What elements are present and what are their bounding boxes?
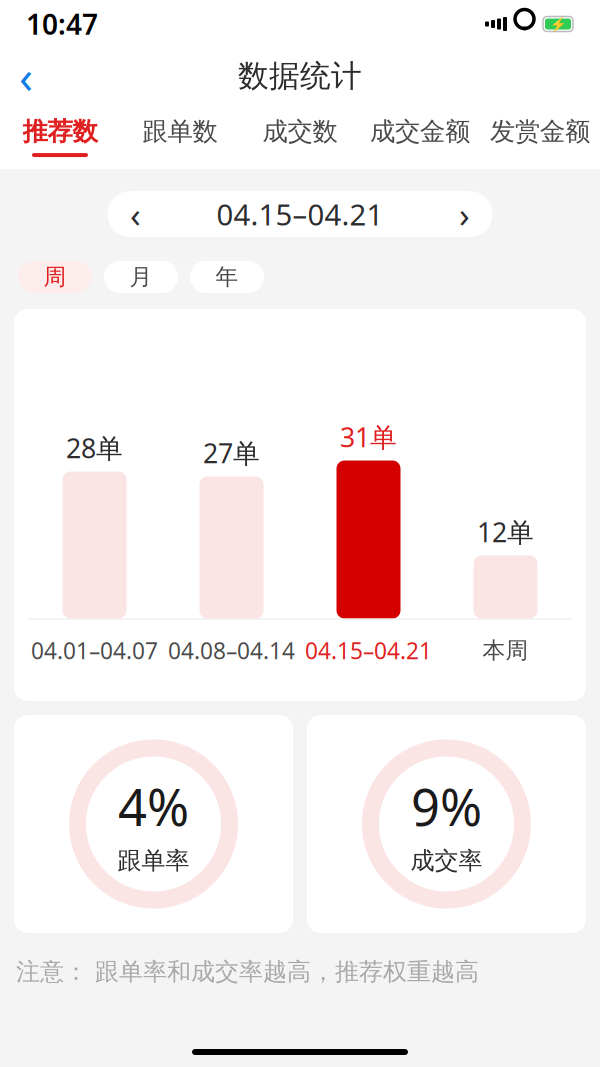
button[interactable]: 跟单数: [120, 107, 240, 166]
staticText: 推荐数: [22, 116, 97, 147]
staticText: 周: [43, 263, 66, 291]
button[interactable]: Previous week: [107, 191, 163, 237]
staticText: ⚡: [549, 16, 566, 32]
staticText: 10:47: [26, 5, 98, 43]
staticText: 04.15–04.21: [305, 635, 432, 665]
button[interactable]: 成交数: [240, 107, 360, 166]
staticText: 跟单数: [142, 116, 217, 147]
staticText: 月: [129, 263, 152, 291]
button[interactable]: 推荐数: [0, 107, 120, 166]
staticText: 注意： 跟单率和成交率越高，推荐权重越高: [16, 957, 479, 986]
button[interactable]: Next week: [436, 191, 492, 237]
staticText: 04.08–04.14: [168, 635, 295, 665]
staticText: 12单: [477, 514, 534, 549]
staticText: 28单: [66, 430, 123, 465]
staticText: 跟单率: [117, 846, 189, 875]
staticText: 9%: [411, 773, 482, 840]
staticText: ‹: [19, 46, 33, 106]
staticText: 发赏金额: [490, 116, 590, 147]
staticText: 成交率: [410, 846, 482, 875]
staticText: ›: [459, 191, 470, 237]
staticText: 31单: [340, 419, 397, 454]
staticText: ‹: [130, 191, 141, 237]
staticText: 年: [215, 263, 238, 291]
staticText: 04.15–04.21: [216, 194, 383, 233]
button[interactable]: 年: [190, 261, 264, 293]
staticText: 27单: [203, 435, 260, 470]
staticText: 成交数: [262, 116, 337, 147]
staticText: 数据统计: [238, 57, 362, 95]
button[interactable]: 周: [18, 261, 92, 293]
staticText: 成交金额: [370, 116, 470, 147]
staticText: 4%: [118, 773, 189, 840]
button[interactable]: 月: [104, 261, 178, 293]
button[interactable]: Back: [0, 54, 52, 98]
staticText: 04.01–04.07: [31, 635, 158, 665]
staticText: 本周: [482, 637, 528, 664]
button[interactable]: 成交金额: [360, 107, 480, 166]
button[interactable]: 发赏金额: [480, 107, 600, 166]
